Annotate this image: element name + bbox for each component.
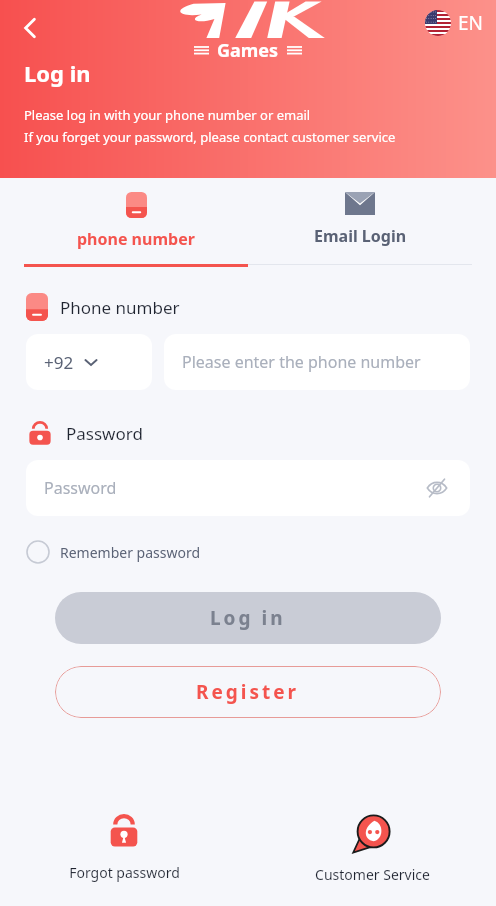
staticText: EN xyxy=(458,10,484,36)
button[interactable]: Forgot password xyxy=(29,807,219,888)
staticText: Phone number xyxy=(60,296,180,319)
staticText: Please log in with your phone number or … xyxy=(24,106,311,124)
staticText: phone number xyxy=(77,228,195,250)
staticText: Please enter the phone number xyxy=(182,351,421,373)
staticText: Remember password xyxy=(60,543,201,562)
button[interactable]: Password xyxy=(26,460,470,516)
button[interactable]: Email Login xyxy=(248,184,472,261)
button[interactable]: Register xyxy=(55,666,441,718)
staticText: Register xyxy=(196,679,300,705)
staticText: Log in xyxy=(24,58,91,88)
button[interactable]: EN xyxy=(425,10,484,36)
staticText: Forgot password xyxy=(69,863,180,882)
staticText: Customer Service xyxy=(315,865,430,884)
staticText: Log in xyxy=(210,605,286,631)
button[interactable]: phone number xyxy=(24,184,248,264)
staticText: Games xyxy=(217,38,279,63)
button[interactable]: Log in xyxy=(55,592,441,644)
button[interactable]: Back xyxy=(8,6,52,50)
button[interactable]: Show password xyxy=(422,473,452,503)
staticText: Password xyxy=(66,422,143,445)
staticText: Password xyxy=(44,477,117,499)
staticText: If you forget your password, please cont… xyxy=(24,128,396,146)
button[interactable]: Please enter the phone number xyxy=(164,334,470,390)
button[interactable]: +92 xyxy=(26,334,152,390)
staticText: +92 xyxy=(44,351,74,374)
button[interactable]: Customer Service xyxy=(277,807,467,890)
button[interactable]: Remember password xyxy=(22,536,205,568)
staticText: Email Login xyxy=(314,225,407,247)
